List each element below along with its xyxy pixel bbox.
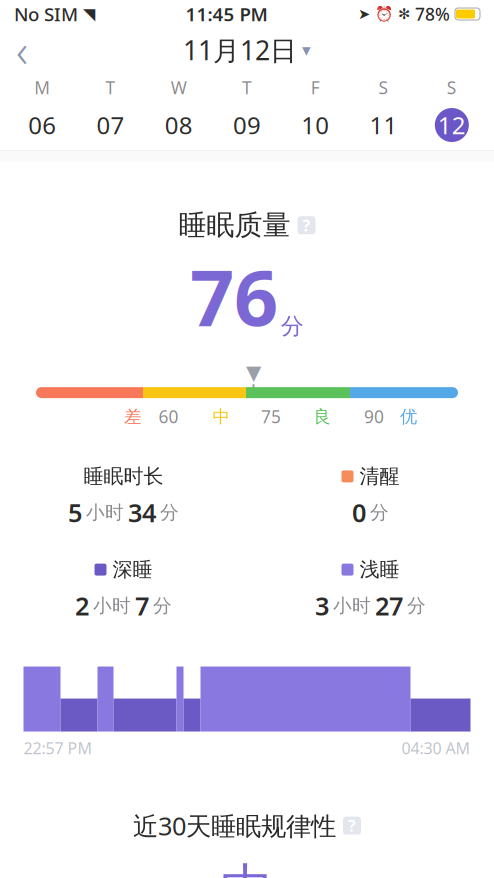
button[interactable]: F — [281, 76, 349, 142]
staticText: 09 — [233, 109, 261, 141]
staticText: 10 — [301, 109, 329, 141]
staticText: 深睡 — [112, 557, 152, 582]
staticText: No SIM — [14, 2, 78, 26]
staticText: 11 — [370, 109, 398, 141]
staticText: T — [242, 76, 252, 99]
staticText: ✻ — [398, 6, 410, 22]
staticText: S — [379, 76, 389, 99]
staticText: 分 — [407, 594, 426, 617]
staticText: 分 — [153, 594, 172, 617]
staticText: ⏰ — [375, 6, 393, 22]
staticText: 近30天睡眠规律性 — [133, 809, 336, 842]
staticText: 分 — [281, 312, 304, 340]
staticText: 5 — [68, 496, 82, 529]
staticText: 12 — [438, 109, 466, 141]
button[interactable]: W — [145, 76, 213, 142]
button[interactable]: S — [418, 76, 486, 142]
staticText: 中 — [212, 406, 229, 427]
button[interactable]: T — [213, 76, 281, 142]
staticText: 0 — [352, 496, 366, 529]
staticText: 08 — [165, 109, 193, 141]
staticText: 小时 — [333, 594, 371, 617]
staticText: 分 — [160, 501, 179, 524]
staticText: 优 — [400, 406, 417, 427]
staticText: ? — [302, 215, 310, 236]
staticText: 3 — [315, 589, 329, 622]
staticText: 中 — [220, 856, 273, 878]
button[interactable]: T — [76, 76, 145, 142]
button[interactable]: Help — [343, 817, 361, 835]
staticText: ▾ — [302, 40, 311, 60]
staticText: 分 — [370, 501, 389, 524]
staticText: ? — [348, 815, 356, 836]
staticText: 76 — [190, 244, 278, 347]
button[interactable]: Help — [297, 216, 315, 234]
staticText: 90 — [364, 405, 384, 428]
staticText: 07 — [96, 109, 124, 141]
staticText: 34 — [128, 496, 156, 529]
staticText: 04:30 AM — [401, 737, 470, 759]
staticText: 11月12日 — [183, 32, 297, 68]
staticText: ◥ — [83, 5, 95, 23]
staticText: 小时 — [86, 501, 124, 524]
staticText: 差 — [124, 406, 141, 427]
staticText: 2 — [75, 589, 89, 622]
staticText: ▼ — [246, 361, 261, 384]
staticText: 22:57 PM — [23, 737, 92, 759]
staticText: W — [171, 76, 187, 99]
staticText: ‹ — [16, 20, 28, 80]
staticText: M — [34, 76, 50, 99]
staticText: 良 — [313, 406, 330, 427]
staticText: F — [311, 76, 320, 99]
staticText: 06 — [28, 109, 56, 141]
staticText: 睡眠质量 — [178, 208, 290, 242]
button[interactable]: Back — [0, 30, 44, 70]
staticText: S — [447, 76, 457, 99]
staticText: 11:45 PM — [185, 2, 267, 26]
staticText: 小时 — [93, 594, 131, 617]
staticText: ➤ — [358, 6, 370, 22]
button[interactable]: M — [8, 76, 76, 142]
staticText: 浅睡 — [359, 557, 399, 582]
button[interactable]: S — [349, 76, 418, 142]
staticText: 睡眠时长 — [83, 464, 163, 489]
staticText: 78% — [415, 2, 450, 25]
staticText: 27 — [375, 589, 403, 622]
staticText: 60 — [158, 405, 178, 428]
staticText: 7 — [135, 589, 149, 622]
staticText: T — [105, 76, 115, 99]
staticText: 75 — [261, 405, 281, 428]
button[interactable]: 11月12日 — [183, 32, 311, 68]
staticText: 清醒 — [359, 464, 399, 489]
